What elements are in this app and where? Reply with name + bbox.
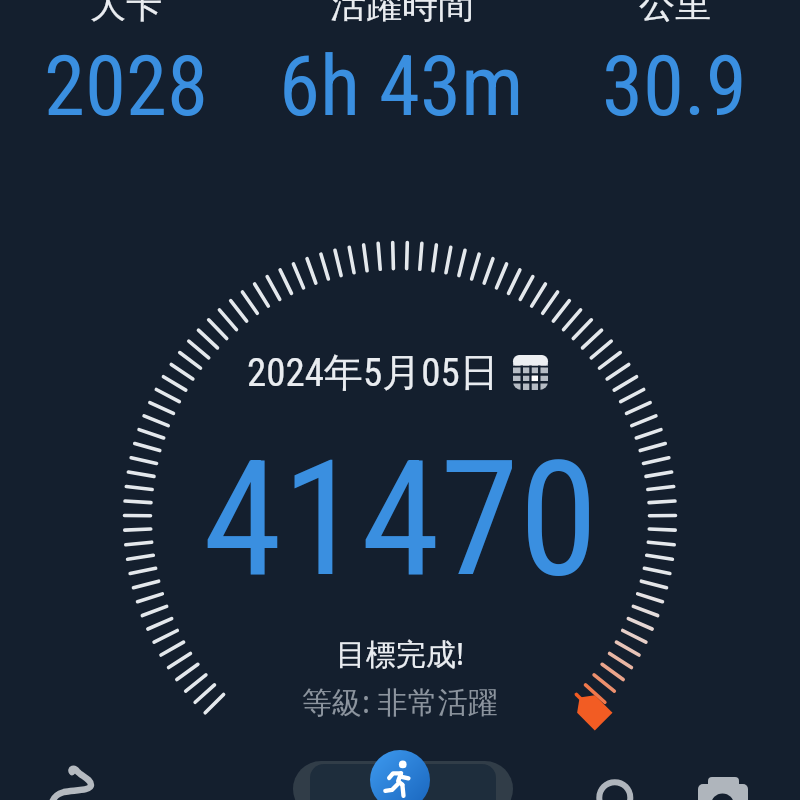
staticText: 6h 43m bbox=[279, 38, 524, 135]
staticText: 大卡 bbox=[90, 0, 162, 27]
button[interactable]: Activity tab bbox=[293, 761, 513, 800]
staticText: 2028 bbox=[44, 38, 208, 135]
staticText: 2024年5月05日 bbox=[247, 348, 499, 397]
staticText: 等級: 非常活躍 bbox=[302, 681, 498, 722]
button[interactable]: Routes bbox=[30, 748, 102, 800]
staticText: 公里 bbox=[639, 0, 711, 27]
staticText: 30.9 bbox=[602, 38, 747, 135]
button[interactable]: Start run bbox=[370, 750, 430, 800]
staticText: 目標完成! bbox=[336, 633, 465, 674]
button[interactable]: Camera bbox=[690, 760, 758, 800]
button[interactable]: Search bbox=[580, 760, 648, 800]
staticText: 活躍時間 bbox=[330, 0, 474, 27]
staticText: 41470 bbox=[203, 426, 598, 614]
